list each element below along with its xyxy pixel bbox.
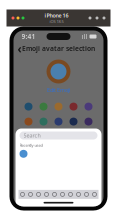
- button[interactable]: Colour: [84, 118, 92, 126]
- staticText: Edit Emoji: [47, 86, 70, 94]
- button[interactable]: Category: [66, 190, 74, 198]
- staticText: Emoji avatar selection: [22, 44, 95, 53]
- button[interactable]: Colour: [39, 103, 47, 111]
- staticText: iOS 18.5: [49, 19, 63, 24]
- staticText: ıll: [81, 32, 87, 41]
- staticText: Search: [23, 132, 40, 139]
- button[interactable]: Category: [34, 190, 42, 198]
- button[interactable]: Category: [26, 190, 34, 198]
- button[interactable]: Category: [18, 190, 26, 198]
- button[interactable]: Category: [90, 190, 98, 198]
- button[interactable]: Category: [50, 190, 58, 198]
- button[interactable]: Colour: [69, 118, 77, 126]
- button[interactable]: Edit Emoji: [47, 86, 70, 94]
- button[interactable]: Category: [74, 190, 82, 198]
- staticText: Recently used: [19, 142, 42, 148]
- button[interactable]: Colour: [39, 118, 47, 126]
- button[interactable]: Colour: [54, 103, 62, 111]
- button[interactable]: Category: [58, 190, 66, 198]
- button[interactable]: Colour: [69, 103, 77, 111]
- button[interactable]: Colour: [24, 118, 32, 126]
- button[interactable]: Category: [42, 190, 50, 198]
- button[interactable]: Back: [13, 40, 21, 56]
- staticText: ‹: [17, 40, 21, 56]
- button[interactable]: Colour: [54, 118, 62, 126]
- staticText: iPhone 16: [44, 12, 68, 19]
- button[interactable]: Category: [82, 190, 90, 198]
- button[interactable]: Colour: [24, 103, 32, 111]
- staticText: 9:41: [21, 32, 35, 41]
- button[interactable]: Colour: [84, 103, 92, 111]
